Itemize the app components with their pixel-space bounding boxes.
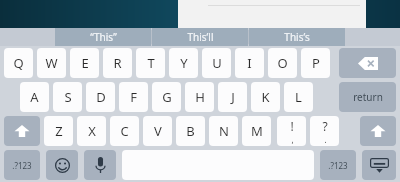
button[interactable]: Emoji [46,150,78,180]
button[interactable]: T [136,48,165,78]
button[interactable]: Dictate [84,150,116,180]
button[interactable]: .?123 [4,150,40,180]
button[interactable]: P [301,48,330,78]
staticText: Y [180,54,188,72]
staticText: G [162,88,172,106]
button[interactable]: return [339,82,396,112]
staticText: Q [13,54,24,72]
staticText: ? [322,118,328,134]
button[interactable]: N [209,116,238,146]
button[interactable]: B [176,116,205,146]
button[interactable]: W [37,48,66,78]
button[interactable]: J [218,82,247,112]
button[interactable]: Shift [360,116,396,146]
staticText: S [64,88,72,106]
button[interactable]: M [242,116,271,146]
button[interactable]: K [251,82,280,112]
button[interactable]: V [143,116,172,146]
staticText: T [147,54,155,72]
staticText: .?123 [12,160,32,171]
staticText: U [212,54,222,72]
staticText: “This” [90,30,117,44]
button[interactable]: L [284,82,313,112]
staticText: X [88,122,96,140]
staticText: F [130,88,137,106]
button[interactable]: I [235,48,264,78]
staticText: Z [55,122,63,140]
staticText: This’ll [187,30,214,44]
staticText: O [277,54,288,72]
button[interactable]: “This” [55,28,151,46]
staticText: V [154,122,162,140]
staticText: B [186,122,195,140]
button[interactable]: O [268,48,297,78]
staticText: M [251,122,263,140]
staticText: P [312,54,320,72]
button[interactable]: Q [4,48,33,78]
staticText: K [261,88,270,106]
button[interactable]: C [110,116,139,146]
button[interactable]: F [119,82,148,112]
button[interactable]: Shift [4,116,40,146]
staticText: L [295,88,302,106]
staticText: , [291,134,294,145]
staticText: J [231,88,235,106]
staticText: This’s [284,30,310,44]
staticText: D [96,88,106,106]
staticText: .?123 [328,160,348,171]
staticText: I [247,54,252,72]
button[interactable]: ! [277,116,306,146]
button[interactable]: E [70,48,99,78]
staticText: ! [290,118,294,134]
staticText: R [113,54,122,72]
button[interactable]: D [86,82,115,112]
staticText: A [30,88,39,106]
button[interactable]: Delete [339,48,396,78]
button[interactable]: A [20,82,49,112]
button[interactable]: Hide keyboard [362,150,396,180]
button[interactable]: This’ll [152,28,248,46]
staticText: . [324,134,327,145]
staticText: E [81,54,89,72]
staticText: C [120,122,129,140]
button[interactable]: G [152,82,181,112]
staticText: W [45,54,58,72]
button[interactable]: ? [310,116,339,146]
staticText: return [353,90,383,104]
button[interactable]: S [53,82,82,112]
button[interactable]: Y [169,48,198,78]
button[interactable]: H [185,82,214,112]
staticText: H [195,88,205,106]
button[interactable]: X [77,116,106,146]
button[interactable]: This’s [249,28,345,46]
button[interactable]: U [202,48,231,78]
staticText: N [219,122,229,140]
button[interactable]: Z [44,116,73,146]
button[interactable]: R [103,48,132,78]
button[interactable]: .?123 [320,150,356,180]
